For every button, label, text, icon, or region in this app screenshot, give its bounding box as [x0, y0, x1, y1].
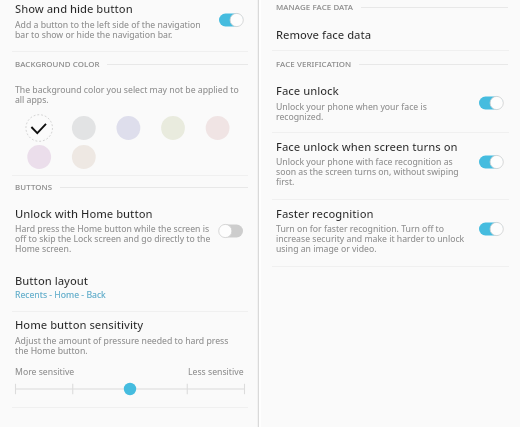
staticText: Adjust the amount of pressure needed to …: [15, 335, 243, 357]
staticText: BUTTONS: [15, 182, 53, 193]
button[interactable]: Face unlock when screen turns on: [474, 151, 508, 173]
staticText: Unlock your phone when your face is reco…: [276, 101, 466, 123]
staticText: Less sensitive: [188, 366, 244, 378]
staticText: FACE VERIFICATION: [276, 59, 352, 70]
staticText: Show and hide button: [15, 1, 133, 16]
button[interactable]: [260, 204, 520, 258]
button[interactable]: [260, 137, 520, 191]
staticText: Hard press the Home button while the scr…: [15, 223, 213, 255]
staticText: The background color you select may not …: [15, 84, 243, 106]
button[interactable]: Grey background colour: [72, 116, 96, 140]
staticText: Unlock your phone with face recognition …: [276, 156, 464, 188]
staticText: Unlock with Home button: [15, 206, 153, 221]
button[interactable]: [0, 204, 258, 258]
staticText: Face unlock: [276, 83, 339, 98]
staticText: Recents - Home - Back: [15, 289, 106, 301]
button[interactable]: Show and hide button: [214, 9, 248, 31]
button[interactable]: [260, 82, 520, 124]
staticText: Faster recognition: [276, 206, 374, 221]
button[interactable]: [260, 24, 520, 46]
button[interactable]: Beige background colour: [72, 145, 96, 169]
button[interactable]: Home button sensitivity: [15, 381, 245, 397]
button[interactable]: Faster recognition: [474, 218, 508, 240]
button[interactable]: Green background colour: [161, 116, 185, 140]
button[interactable]: Face unlock: [474, 92, 508, 114]
staticText: Face unlock when screen turns on: [276, 139, 458, 154]
staticText: MANAGE FACE DATA: [276, 2, 354, 13]
staticText: Remove face data: [276, 27, 372, 42]
button[interactable]: White background colour: [27, 116, 51, 140]
staticText: Button layout: [15, 273, 89, 288]
staticText: Turn on for faster recognition. Turn off…: [276, 223, 466, 255]
button[interactable]: Blue background colour: [116, 116, 140, 140]
button[interactable]: Purple background colour: [27, 145, 51, 169]
button[interactable]: Pink background colour: [206, 116, 230, 140]
button[interactable]: [0, 271, 258, 304]
staticText: Home button sensitivity: [15, 317, 144, 332]
staticText: BACKGROUND COLOR: [15, 59, 100, 70]
staticText: More sensitive: [15, 366, 75, 378]
button[interactable]: [0, 0, 258, 46]
button[interactable]: Unlock with Home button: [214, 220, 248, 242]
staticText: Add a button to the left side of the nav…: [15, 19, 207, 41]
